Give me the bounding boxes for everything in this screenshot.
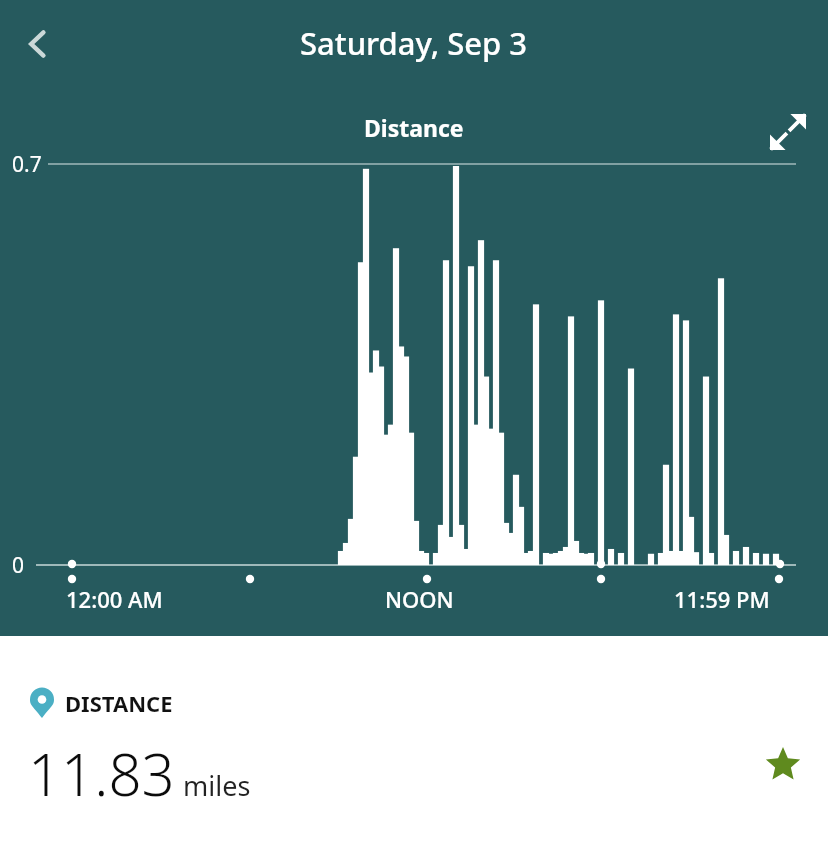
button[interactable]: DISTANCE — [0, 636, 828, 844]
staticText: 11:59 PM — [674, 584, 770, 614]
staticText: DISTANCE — [65, 688, 173, 718]
button[interactable]: Back — [4, 10, 72, 78]
button[interactable]: Expand chart — [756, 100, 820, 164]
button[interactable]: Favorite — [752, 734, 814, 796]
staticText: 11.83 — [28, 734, 175, 813]
staticText: Distance — [364, 112, 464, 143]
staticText: NOON — [385, 584, 454, 614]
staticText: miles — [183, 767, 251, 804]
staticText: 0 — [12, 551, 25, 580]
staticText: 12:00 AM — [66, 584, 163, 614]
staticText: Saturday, Sep 3 — [300, 22, 528, 64]
staticText: 0.7 — [12, 150, 42, 179]
